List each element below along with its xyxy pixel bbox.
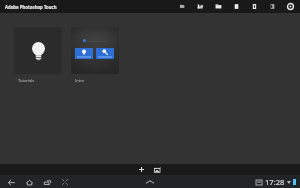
button[interactable]: Camera bbox=[174, 0, 190, 13]
button[interactable]: Settings bbox=[282, 0, 298, 13]
staticText: 17:28 bbox=[265, 177, 285, 187]
button[interactable]: Tutorials bbox=[14, 27, 62, 74]
button[interactable]: Recent apps bbox=[41, 176, 53, 188]
button[interactable]: New bbox=[228, 0, 244, 13]
button[interactable]: Import image bbox=[152, 164, 164, 175]
button[interactable]: Device bbox=[246, 0, 262, 13]
button[interactable]: Add project bbox=[135, 164, 147, 175]
button[interactable]: Share bbox=[192, 0, 208, 13]
button[interactable]: Expand bbox=[144, 176, 156, 188]
button[interactable]: Watch Tutorials bbox=[75, 48, 93, 59]
button[interactable]: Help bbox=[264, 0, 280, 13]
button[interactable]: Back bbox=[5, 176, 17, 188]
button[interactable]: Start a Project bbox=[96, 48, 114, 59]
button[interactable]: Exit fullscreen bbox=[59, 176, 71, 188]
staticText: Tutorials bbox=[18, 78, 35, 83]
staticText: Photoshop Touch bbox=[88, 39, 109, 42]
button[interactable]: Home bbox=[23, 176, 35, 188]
button[interactable]: Open bbox=[210, 0, 226, 13]
staticText: Adobe Photoshop Touch bbox=[5, 4, 57, 10]
button[interactable]: Photoshop Touch bbox=[71, 27, 119, 74]
staticText: Intro bbox=[75, 78, 85, 83]
